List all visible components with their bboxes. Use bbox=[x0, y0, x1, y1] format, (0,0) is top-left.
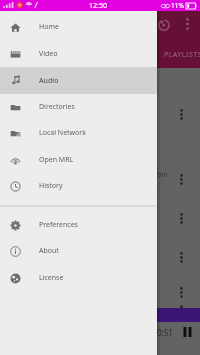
button[interactable]: About bbox=[0, 238, 157, 264]
button[interactable]: Item options bbox=[174, 106, 188, 122]
staticText: 11% bbox=[171, 1, 184, 10]
staticText: PLAYLISTS bbox=[164, 50, 200, 60]
button[interactable]: More options bbox=[181, 13, 194, 34]
button[interactable]: Pause bbox=[182, 326, 192, 337]
button[interactable]: Open MRL bbox=[0, 147, 157, 173]
button[interactable]: Item options bbox=[174, 210, 188, 226]
button[interactable]: History bbox=[0, 173, 157, 199]
button[interactable]: Item options bbox=[174, 284, 188, 300]
staticText: License bbox=[39, 273, 64, 283]
button[interactable]: Item options bbox=[0, 276, 200, 308]
button[interactable]: PLAYLISTS bbox=[164, 46, 200, 64]
staticText: Bin bbox=[157, 170, 168, 180]
staticText: Home bbox=[39, 22, 59, 32]
button[interactable]: Refresh bbox=[151, 14, 176, 35]
staticText: Video bbox=[39, 49, 58, 59]
button[interactable]: Directories bbox=[0, 94, 157, 120]
staticText: 4 bbox=[157, 180, 161, 188]
staticText: History bbox=[39, 181, 63, 191]
staticText: Preferences bbox=[39, 220, 78, 230]
staticText: Directories bbox=[39, 102, 75, 112]
button[interactable]: Audio bbox=[0, 67, 157, 94]
button[interactable]: Item options bbox=[0, 237, 200, 276]
button[interactable]: License bbox=[0, 265, 157, 291]
button[interactable]: Home bbox=[0, 14, 157, 40]
button[interactable]: Bin bbox=[0, 159, 200, 198]
staticText: Audio bbox=[39, 76, 59, 86]
staticText: About bbox=[39, 246, 59, 256]
button[interactable]: Preferences bbox=[0, 212, 157, 238]
staticText: Local Network bbox=[39, 128, 86, 138]
button[interactable]: Item options bbox=[174, 171, 188, 187]
staticText: 12:50 bbox=[89, 1, 107, 11]
button[interactable]: Video bbox=[0, 41, 157, 67]
button[interactable]: Local Network bbox=[0, 120, 157, 146]
button[interactable]: Item options bbox=[174, 249, 188, 265]
button[interactable]: Item options bbox=[0, 68, 200, 159]
staticText: Open MRL bbox=[39, 155, 74, 165]
button[interactable]: Item options bbox=[0, 198, 200, 237]
staticText: 0:51 bbox=[157, 327, 173, 338]
